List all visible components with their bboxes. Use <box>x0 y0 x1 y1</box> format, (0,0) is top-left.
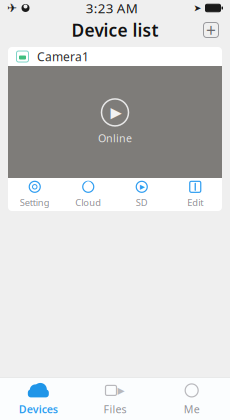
staticText: ➤ <box>193 3 201 13</box>
staticText: ▶ <box>117 385 124 396</box>
staticText: ▶ <box>110 104 121 121</box>
button[interactable]: Me <box>153 378 230 420</box>
staticText: Online <box>98 131 132 145</box>
staticText: ✈ <box>7 1 17 15</box>
staticText: + <box>206 18 216 41</box>
button[interactable]: ▶ <box>115 178 168 211</box>
staticText: 3:23 AM <box>86 0 138 17</box>
button[interactable]: Play live stream <box>8 66 222 178</box>
staticText: Devices <box>19 402 58 416</box>
button[interactable]: Edit <box>168 178 222 211</box>
staticText: Device list <box>71 18 158 41</box>
button[interactable]: Setting <box>8 178 61 211</box>
staticText: SD <box>136 196 148 209</box>
button[interactable]: Cloud <box>61 178 115 211</box>
staticText: Camera1 <box>37 48 89 64</box>
staticText: Setting <box>20 196 50 209</box>
staticText: Files <box>103 402 126 416</box>
staticText: ▶ <box>140 183 145 191</box>
button[interactable]: Devices <box>0 378 77 420</box>
staticText: Edit <box>187 196 203 209</box>
button[interactable]: Add device <box>198 17 224 43</box>
staticText: Me <box>184 402 200 416</box>
button[interactable]: ▶ <box>77 378 153 420</box>
staticText: Cloud <box>75 196 101 209</box>
